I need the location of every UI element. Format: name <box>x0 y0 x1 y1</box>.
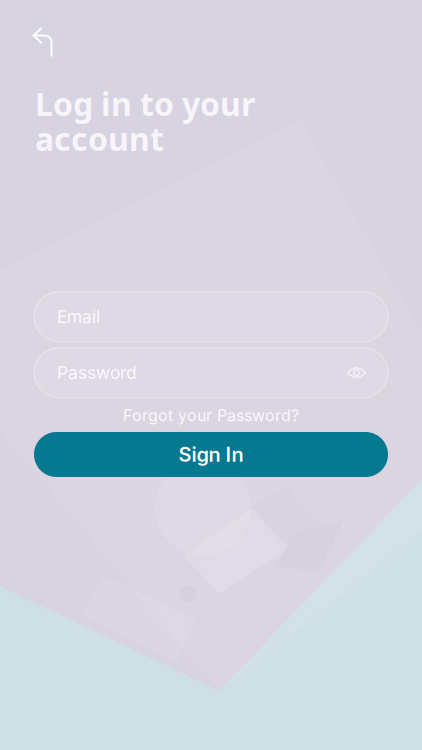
staticText: Password <box>57 362 137 383</box>
staticText: Email <box>57 306 100 327</box>
button[interactable]: Back <box>21 20 64 68</box>
button[interactable]: Password <box>34 348 388 398</box>
staticText: Log in to your <box>35 82 255 125</box>
button[interactable]: Sign In <box>34 432 388 477</box>
button[interactable]: Email <box>34 292 388 342</box>
staticText: Sign In <box>178 442 243 467</box>
staticText: account <box>35 117 164 160</box>
button[interactable]: Forgot your Password? <box>123 403 299 428</box>
staticText: Forgot your Password? <box>123 406 299 425</box>
